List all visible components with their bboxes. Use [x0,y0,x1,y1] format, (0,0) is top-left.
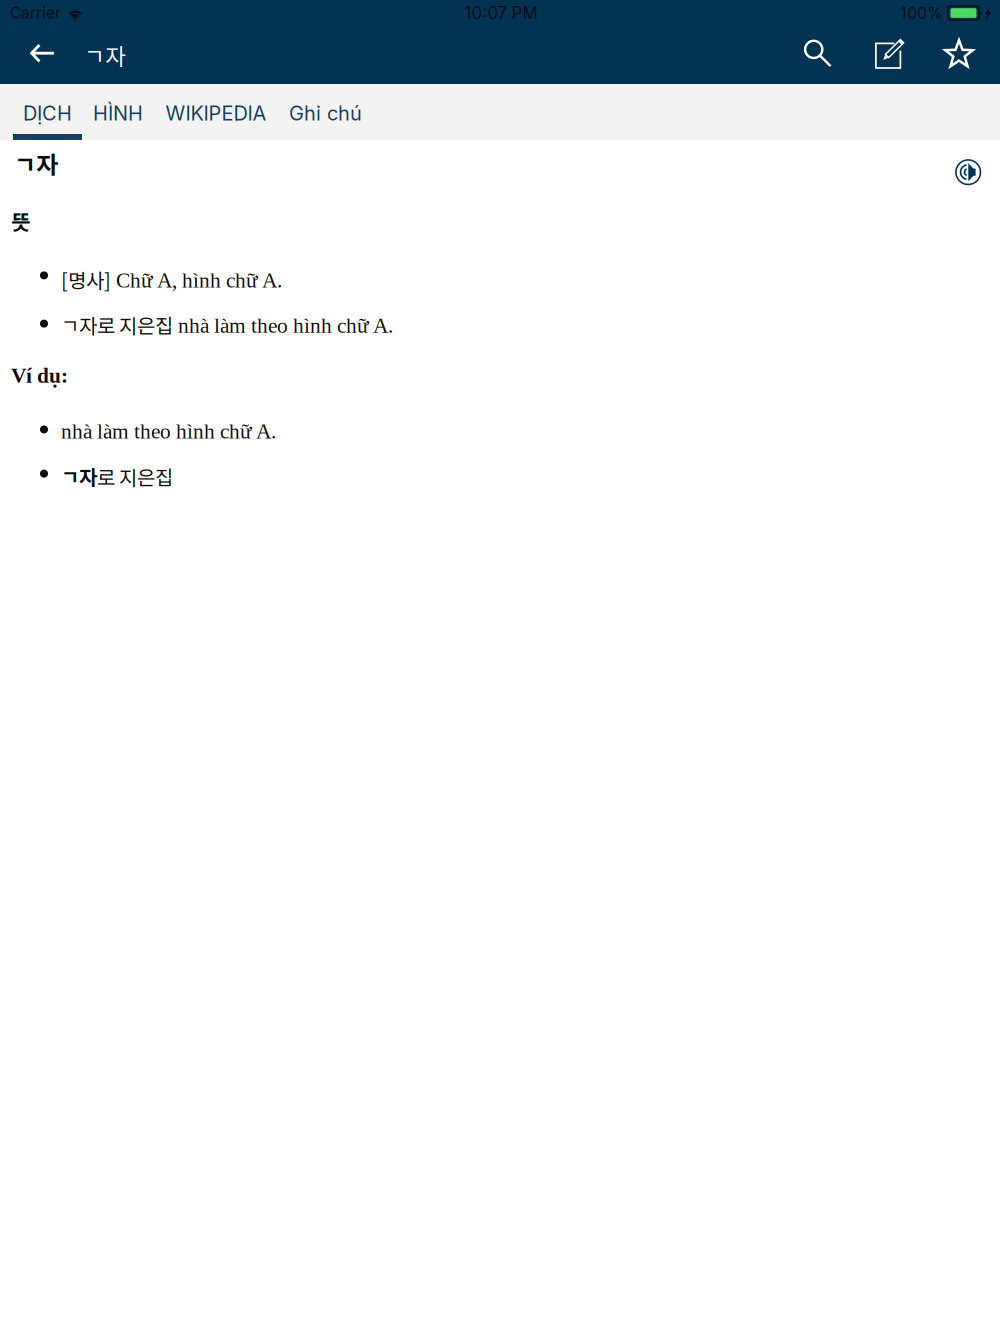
staticText: 100% [900,3,943,23]
button[interactable]: DỊCH [13,84,82,140]
staticText: ㄱ자로 지은집 [61,462,173,490]
button[interactable]: Ghi chú [278,84,373,140]
staticText: nhà làm theo hình chữ A. [61,419,276,443]
staticText: 10:07 PM [464,3,537,23]
staticText: DỊCH [23,101,72,125]
button[interactable]: Add to favorites [929,30,989,80]
button[interactable]: Compose [875,32,929,78]
button[interactable]: WIKIPEDIA [154,84,278,140]
button[interactable]: Search [804,29,875,80]
staticText: 뜻 [11,205,31,236]
staticText: HÌNH [93,101,143,125]
staticText: ㄱ자로 지은집 nhà làm theo hình chữ A. [61,311,393,339]
staticText: [명사] Chữ A, hình chữ A. [61,265,282,294]
staticText: Ghi chú [289,101,362,125]
staticText: ㄱ자 [84,39,126,71]
staticText: WIKIPEDIA [165,101,266,125]
button[interactable]: HÌNH [82,84,154,140]
button[interactable]: Back [0,31,67,79]
staticText: Ví dụ: [11,364,68,387]
button[interactable]: Play pronunciation [948,140,988,193]
staticText: Carrier [10,4,61,22]
staticText: ㄱ자 [14,146,58,181]
